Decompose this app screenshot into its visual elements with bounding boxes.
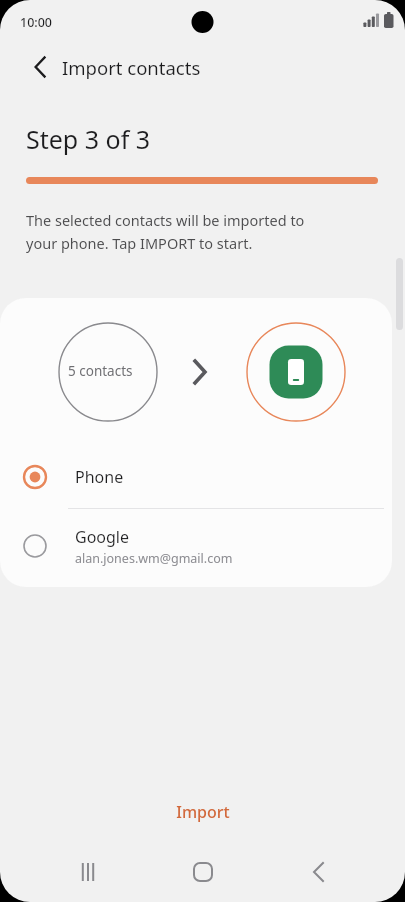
button[interactable]: Back — [22, 50, 56, 84]
staticText: 10:00 — [20, 14, 53, 31]
button[interactable]: Phone — [0, 446, 392, 508]
button[interactable]: Home — [176, 845, 230, 899]
button[interactable]: Google — [0, 509, 392, 583]
staticText: Import — [176, 801, 230, 823]
staticText: Import contacts — [62, 55, 201, 80]
staticText: Step 3 of 3 — [26, 122, 151, 156]
staticText: Google — [75, 526, 130, 548]
button[interactable]: Recents — [61, 845, 115, 899]
staticText: your phone. Tap IMPORT to start. — [26, 233, 253, 253]
staticText: alan.jones.wm@gmail.com — [75, 550, 233, 567]
button[interactable]: Back — [290, 845, 344, 899]
staticText: Phone — [75, 466, 124, 488]
staticText: The selected contacts will be imported t… — [26, 210, 305, 230]
button[interactable]: Import — [150, 797, 256, 827]
staticText: 5 contacts — [68, 362, 133, 380]
